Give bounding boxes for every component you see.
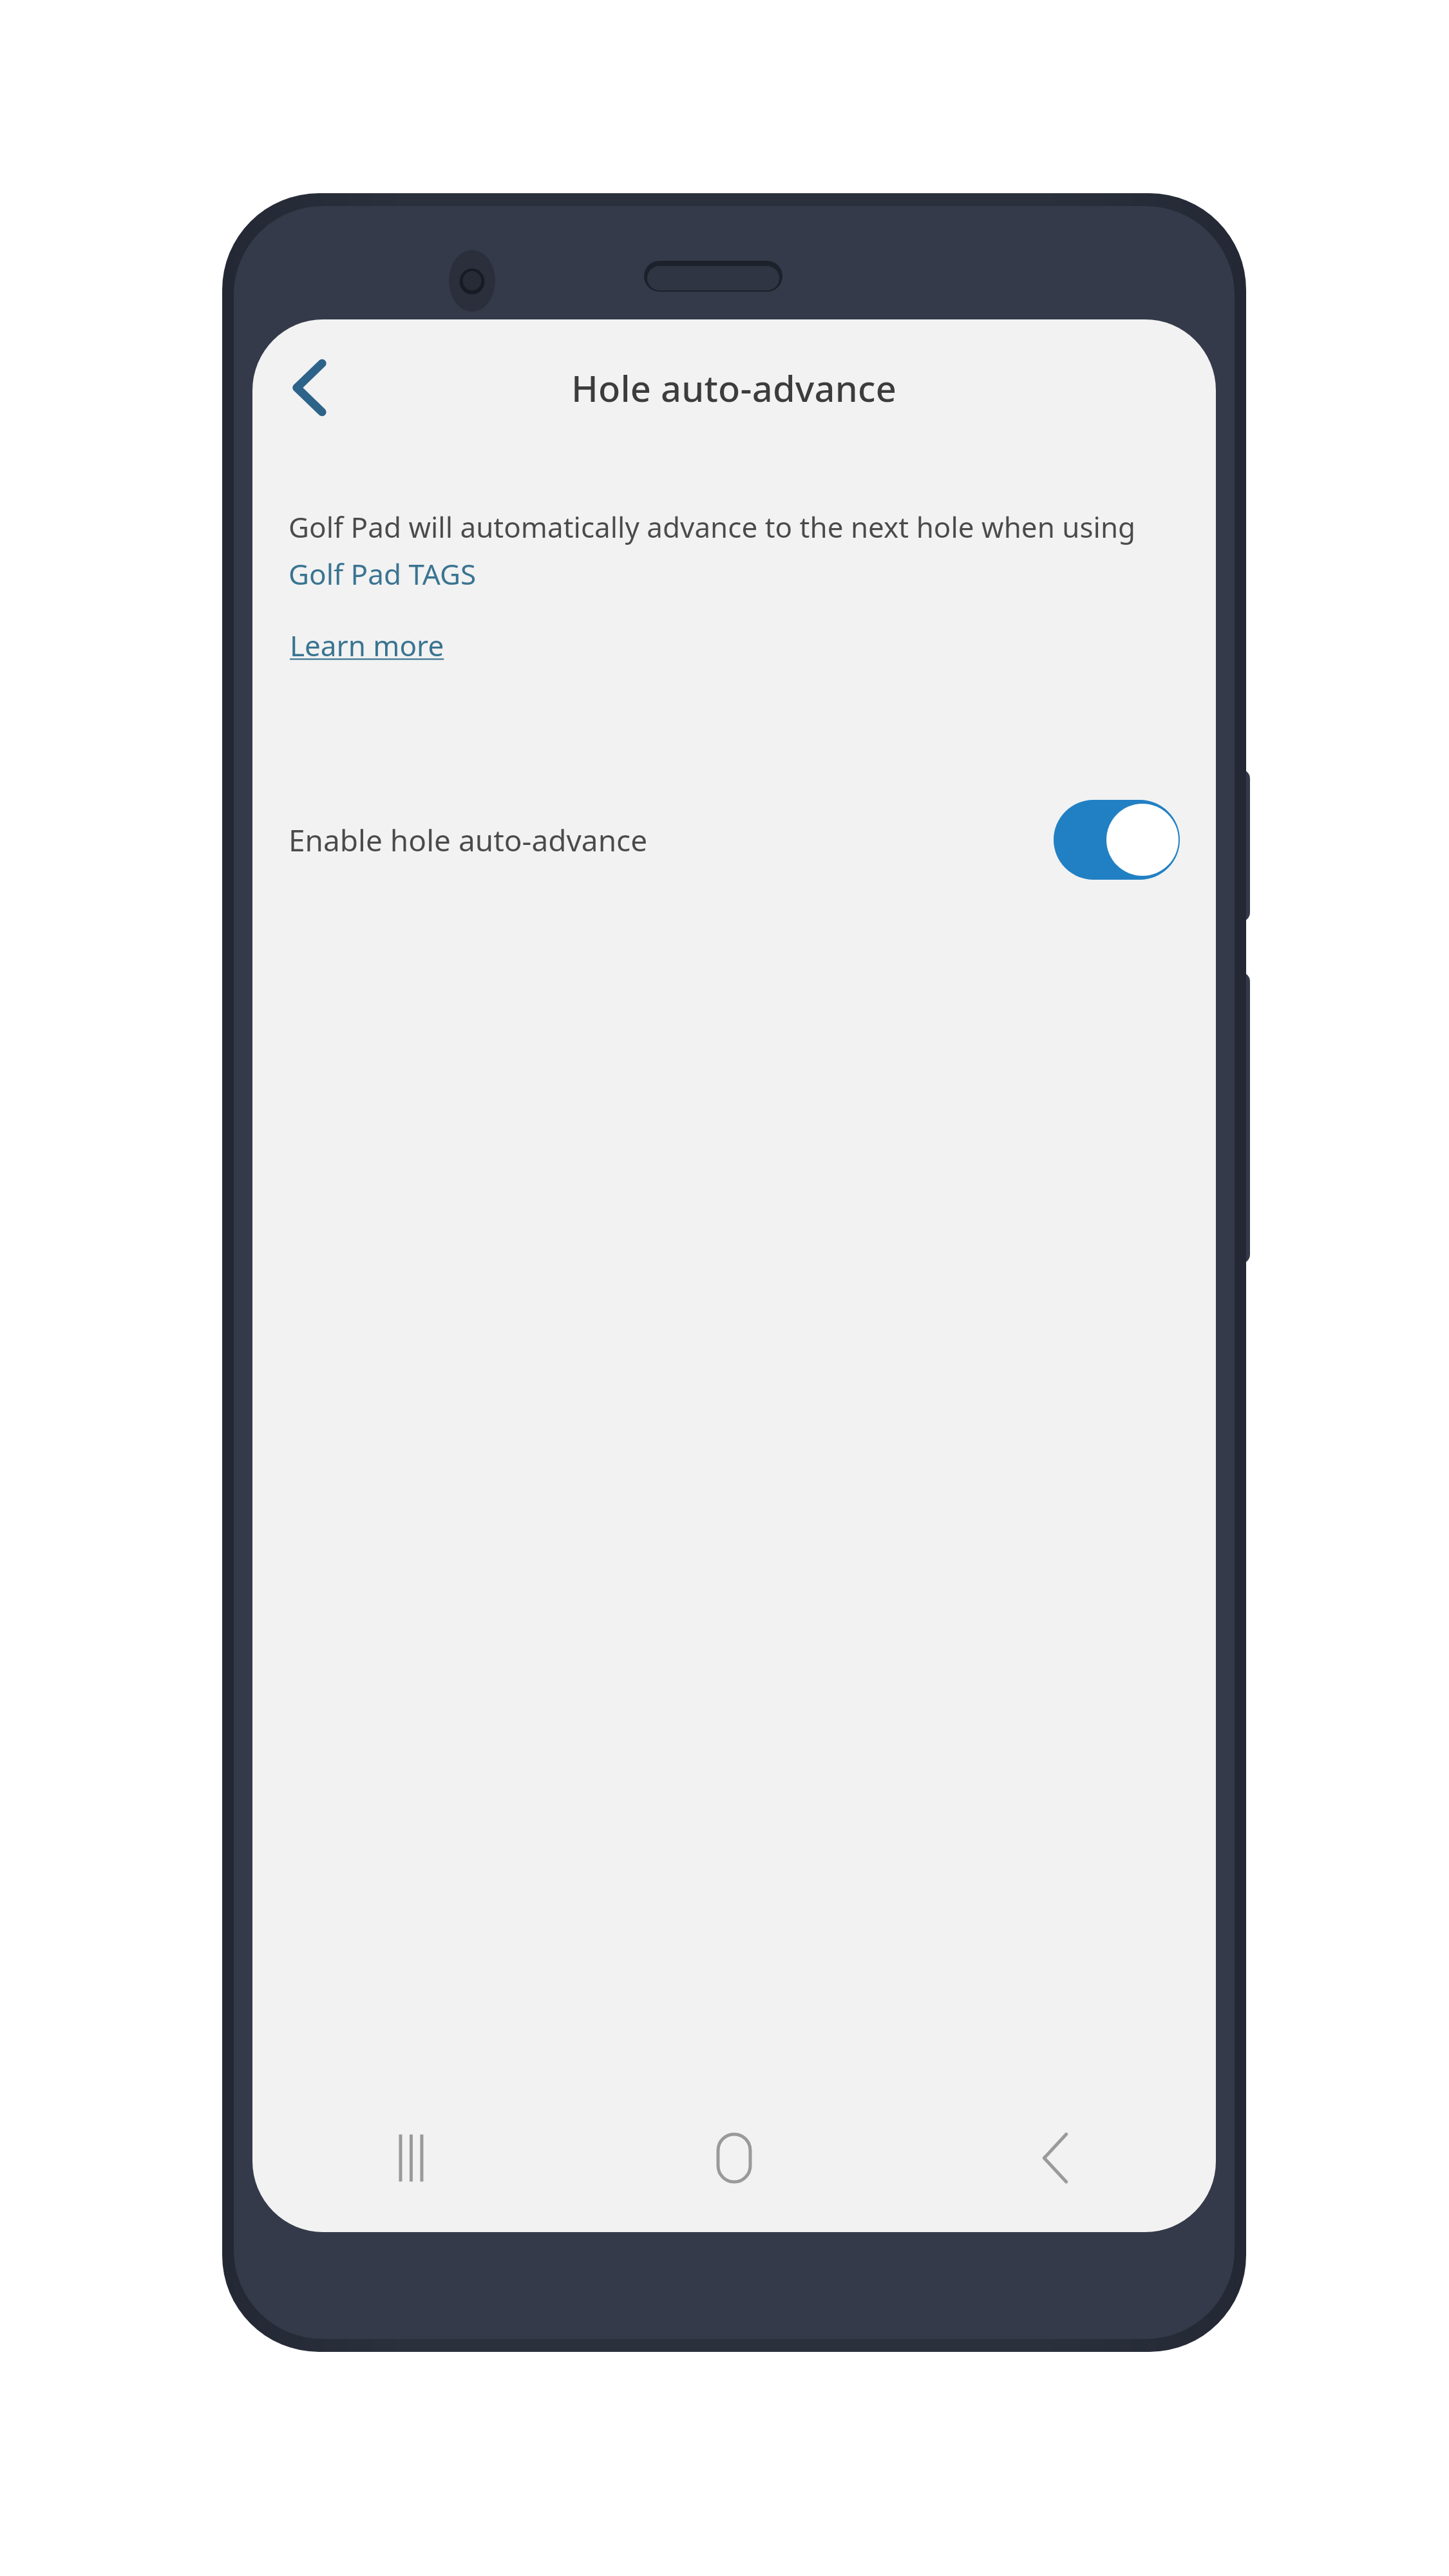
staticText: Golf Pad will automatically advance to t…	[289, 507, 1164, 592]
button[interactable]: Learn more	[289, 622, 446, 668]
staticText: Hole auto-advance	[571, 363, 897, 412]
button[interactable]: Enable hole auto-advance	[252, 782, 1216, 898]
button[interactable]: Back	[274, 353, 344, 422]
button[interactable]: Home	[573, 2084, 895, 2232]
staticText: Enable hole auto-advance	[289, 820, 1054, 860]
button[interactable]: Recent apps	[252, 2084, 573, 2232]
staticText: Learn more	[290, 626, 444, 665]
button[interactable]: Back	[895, 2084, 1216, 2232]
